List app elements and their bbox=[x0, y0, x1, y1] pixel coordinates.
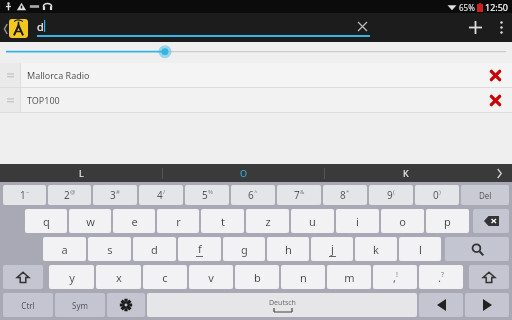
button[interactable]: Del bbox=[461, 185, 509, 205]
button[interactable]: x bbox=[96, 265, 141, 289]
staticText: 4 bbox=[157, 188, 163, 202]
staticText: b bbox=[254, 270, 261, 285]
staticText: q bbox=[43, 214, 50, 229]
button[interactable]: Ctrl bbox=[3, 293, 53, 317]
button[interactable]: g bbox=[223, 237, 265, 261]
button[interactable]: . bbox=[419, 265, 463, 289]
button[interactable]: 0 bbox=[415, 185, 459, 205]
staticText: z bbox=[265, 214, 271, 229]
staticText: & bbox=[300, 188, 305, 196]
button[interactable]: Reorder bbox=[0, 63, 20, 87]
button[interactable]: f bbox=[178, 237, 221, 261]
button[interactable]: y bbox=[49, 265, 94, 289]
staticText: Mallorca Radio bbox=[27, 69, 90, 81]
button[interactable]: Add bbox=[460, 13, 490, 42]
button[interactable]: Left bbox=[419, 293, 463, 317]
button[interactable]: Delete bbox=[478, 63, 512, 87]
staticText: * bbox=[346, 188, 350, 196]
staticText: ( bbox=[393, 188, 395, 196]
button[interactable]: Search bbox=[445, 237, 509, 261]
staticText: u bbox=[309, 214, 316, 229]
staticText: y bbox=[69, 270, 75, 285]
staticText: a bbox=[61, 242, 68, 257]
button[interactable]: More suggestions bbox=[486, 164, 512, 182]
button[interactable]: h bbox=[267, 237, 309, 261]
button[interactable]: Shift bbox=[469, 265, 509, 289]
button[interactable]: s bbox=[88, 237, 131, 261]
staticText: Del bbox=[479, 190, 492, 201]
staticText: p bbox=[444, 214, 451, 229]
button[interactable]: Sym bbox=[55, 293, 105, 317]
button[interactable]: 8 bbox=[323, 185, 367, 205]
button[interactable]: Clear bbox=[354, 18, 370, 34]
staticText: x bbox=[116, 270, 122, 285]
button[interactable]: Settings bbox=[107, 293, 145, 317]
staticText: ? bbox=[441, 270, 445, 280]
button[interactable]: More options bbox=[490, 13, 512, 42]
staticText: 7 bbox=[294, 188, 300, 202]
button[interactable]: w bbox=[69, 209, 111, 233]
button[interactable]: u bbox=[291, 209, 334, 233]
button[interactable]: k bbox=[355, 237, 397, 261]
staticText: 9 bbox=[387, 188, 393, 202]
button[interactable]: m bbox=[327, 265, 371, 289]
staticText: 3 bbox=[110, 188, 116, 202]
button[interactable]: v bbox=[189, 265, 233, 289]
button[interactable]: K bbox=[325, 164, 486, 182]
button[interactable]: d bbox=[133, 237, 176, 261]
button[interactable]: 7 bbox=[277, 185, 321, 205]
staticText: h bbox=[285, 242, 292, 257]
staticText: ^ bbox=[254, 188, 258, 196]
staticText: d bbox=[37, 19, 44, 34]
staticText: L bbox=[79, 167, 84, 179]
staticText: TOP100 bbox=[27, 94, 60, 106]
button[interactable]: 4 bbox=[139, 185, 183, 205]
button[interactable]: Reorder bbox=[0, 63, 512, 87]
staticText: g bbox=[241, 242, 248, 257]
button[interactable]: 2 bbox=[48, 185, 91, 205]
button[interactable]: e bbox=[113, 209, 155, 233]
button[interactable]: q bbox=[25, 209, 67, 233]
staticText: d bbox=[151, 242, 158, 257]
button[interactable]: j bbox=[311, 237, 353, 261]
staticText: j bbox=[331, 241, 334, 256]
staticText: Deutsch bbox=[269, 298, 296, 308]
button[interactable]: 6 bbox=[231, 185, 275, 205]
button[interactable]: Shift bbox=[3, 265, 43, 289]
staticText: w bbox=[86, 214, 95, 229]
button[interactable]: , bbox=[373, 265, 417, 289]
button[interactable]: 5 bbox=[185, 185, 229, 205]
staticText: t bbox=[221, 214, 225, 229]
button[interactable]: Up bbox=[3, 15, 29, 41]
staticText: . bbox=[438, 270, 441, 285]
button[interactable]: 9 bbox=[369, 185, 413, 205]
staticText: 12:50 bbox=[485, 1, 509, 13]
button[interactable]: Backspace bbox=[473, 209, 509, 233]
button[interactable]: a bbox=[43, 237, 86, 261]
button[interactable]: 1 bbox=[3, 185, 46, 205]
button[interactable]: Delete bbox=[478, 88, 512, 112]
staticText: l bbox=[419, 242, 422, 257]
staticText: ! bbox=[396, 270, 398, 280]
button[interactable]: L bbox=[0, 164, 162, 182]
staticText: m bbox=[344, 270, 355, 285]
button[interactable]: b bbox=[235, 265, 279, 289]
button[interactable]: i bbox=[336, 209, 379, 233]
button[interactable]: Reorder bbox=[0, 88, 20, 112]
button[interactable]: n bbox=[281, 265, 325, 289]
button[interactable]: 3 bbox=[93, 185, 137, 205]
button[interactable]: O bbox=[163, 164, 324, 182]
staticText: v bbox=[208, 270, 214, 285]
button[interactable]: p bbox=[426, 209, 469, 233]
button[interactable]: c bbox=[143, 265, 187, 289]
button[interactable]: o bbox=[381, 209, 424, 233]
button[interactable]: Reorder bbox=[0, 88, 512, 112]
staticText: n bbox=[300, 270, 307, 285]
button[interactable]: r bbox=[157, 209, 199, 233]
button[interactable]: Right bbox=[465, 293, 509, 317]
button[interactable]: Deutsch bbox=[147, 293, 417, 317]
button[interactable]: l bbox=[399, 237, 441, 261]
button[interactable]: t bbox=[201, 209, 244, 233]
button[interactable]: z bbox=[246, 209, 289, 233]
staticText: @ bbox=[70, 188, 76, 196]
